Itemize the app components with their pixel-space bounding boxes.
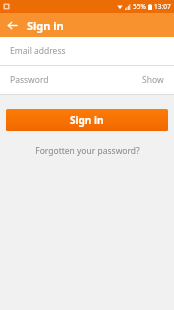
staticText: Sign in bbox=[70, 113, 104, 127]
staticText: Password bbox=[10, 74, 49, 86]
staticText: Email address bbox=[10, 45, 66, 57]
staticText: 55% bbox=[133, 2, 146, 11]
staticText: Show bbox=[142, 74, 164, 86]
staticText: Forgotten your password? bbox=[35, 145, 140, 157]
button[interactable]: Email address bbox=[0, 37, 174, 65]
button[interactable]: Password bbox=[0, 66, 174, 94]
button[interactable]: Sign in bbox=[6, 109, 168, 131]
staticText: Sign in bbox=[27, 18, 64, 33]
button[interactable]: Back bbox=[0, 13, 24, 37]
button[interactable]: Forgotten your password? bbox=[0, 142, 174, 160]
staticText: 13:07 bbox=[154, 2, 171, 11]
